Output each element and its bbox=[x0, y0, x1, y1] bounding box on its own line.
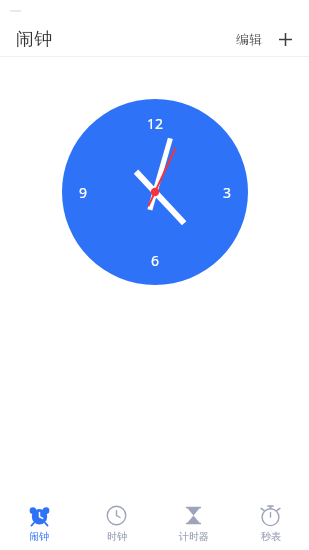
staticText: 时钟 bbox=[107, 530, 127, 543]
staticText: 闹钟 bbox=[16, 28, 52, 51]
button[interactable]: 秒表 bbox=[232, 498, 309, 550]
button[interactable]: 编辑 bbox=[233, 26, 265, 52]
button[interactable]: 时钟 bbox=[78, 498, 155, 550]
staticText: 12 bbox=[147, 114, 164, 133]
staticText: 闹钟 bbox=[29, 530, 49, 543]
staticText: 计时器 bbox=[179, 530, 209, 543]
staticText: 3 bbox=[223, 183, 232, 202]
button[interactable]: Add alarm bbox=[274, 28, 296, 50]
staticText: 编辑 bbox=[236, 31, 262, 47]
staticText: 6 bbox=[151, 251, 160, 270]
button[interactable]: 闹钟 bbox=[0, 498, 78, 550]
button[interactable]: 计时器 bbox=[155, 498, 232, 550]
staticText: 秒表 bbox=[261, 530, 281, 543]
staticText: 9 bbox=[79, 183, 88, 202]
